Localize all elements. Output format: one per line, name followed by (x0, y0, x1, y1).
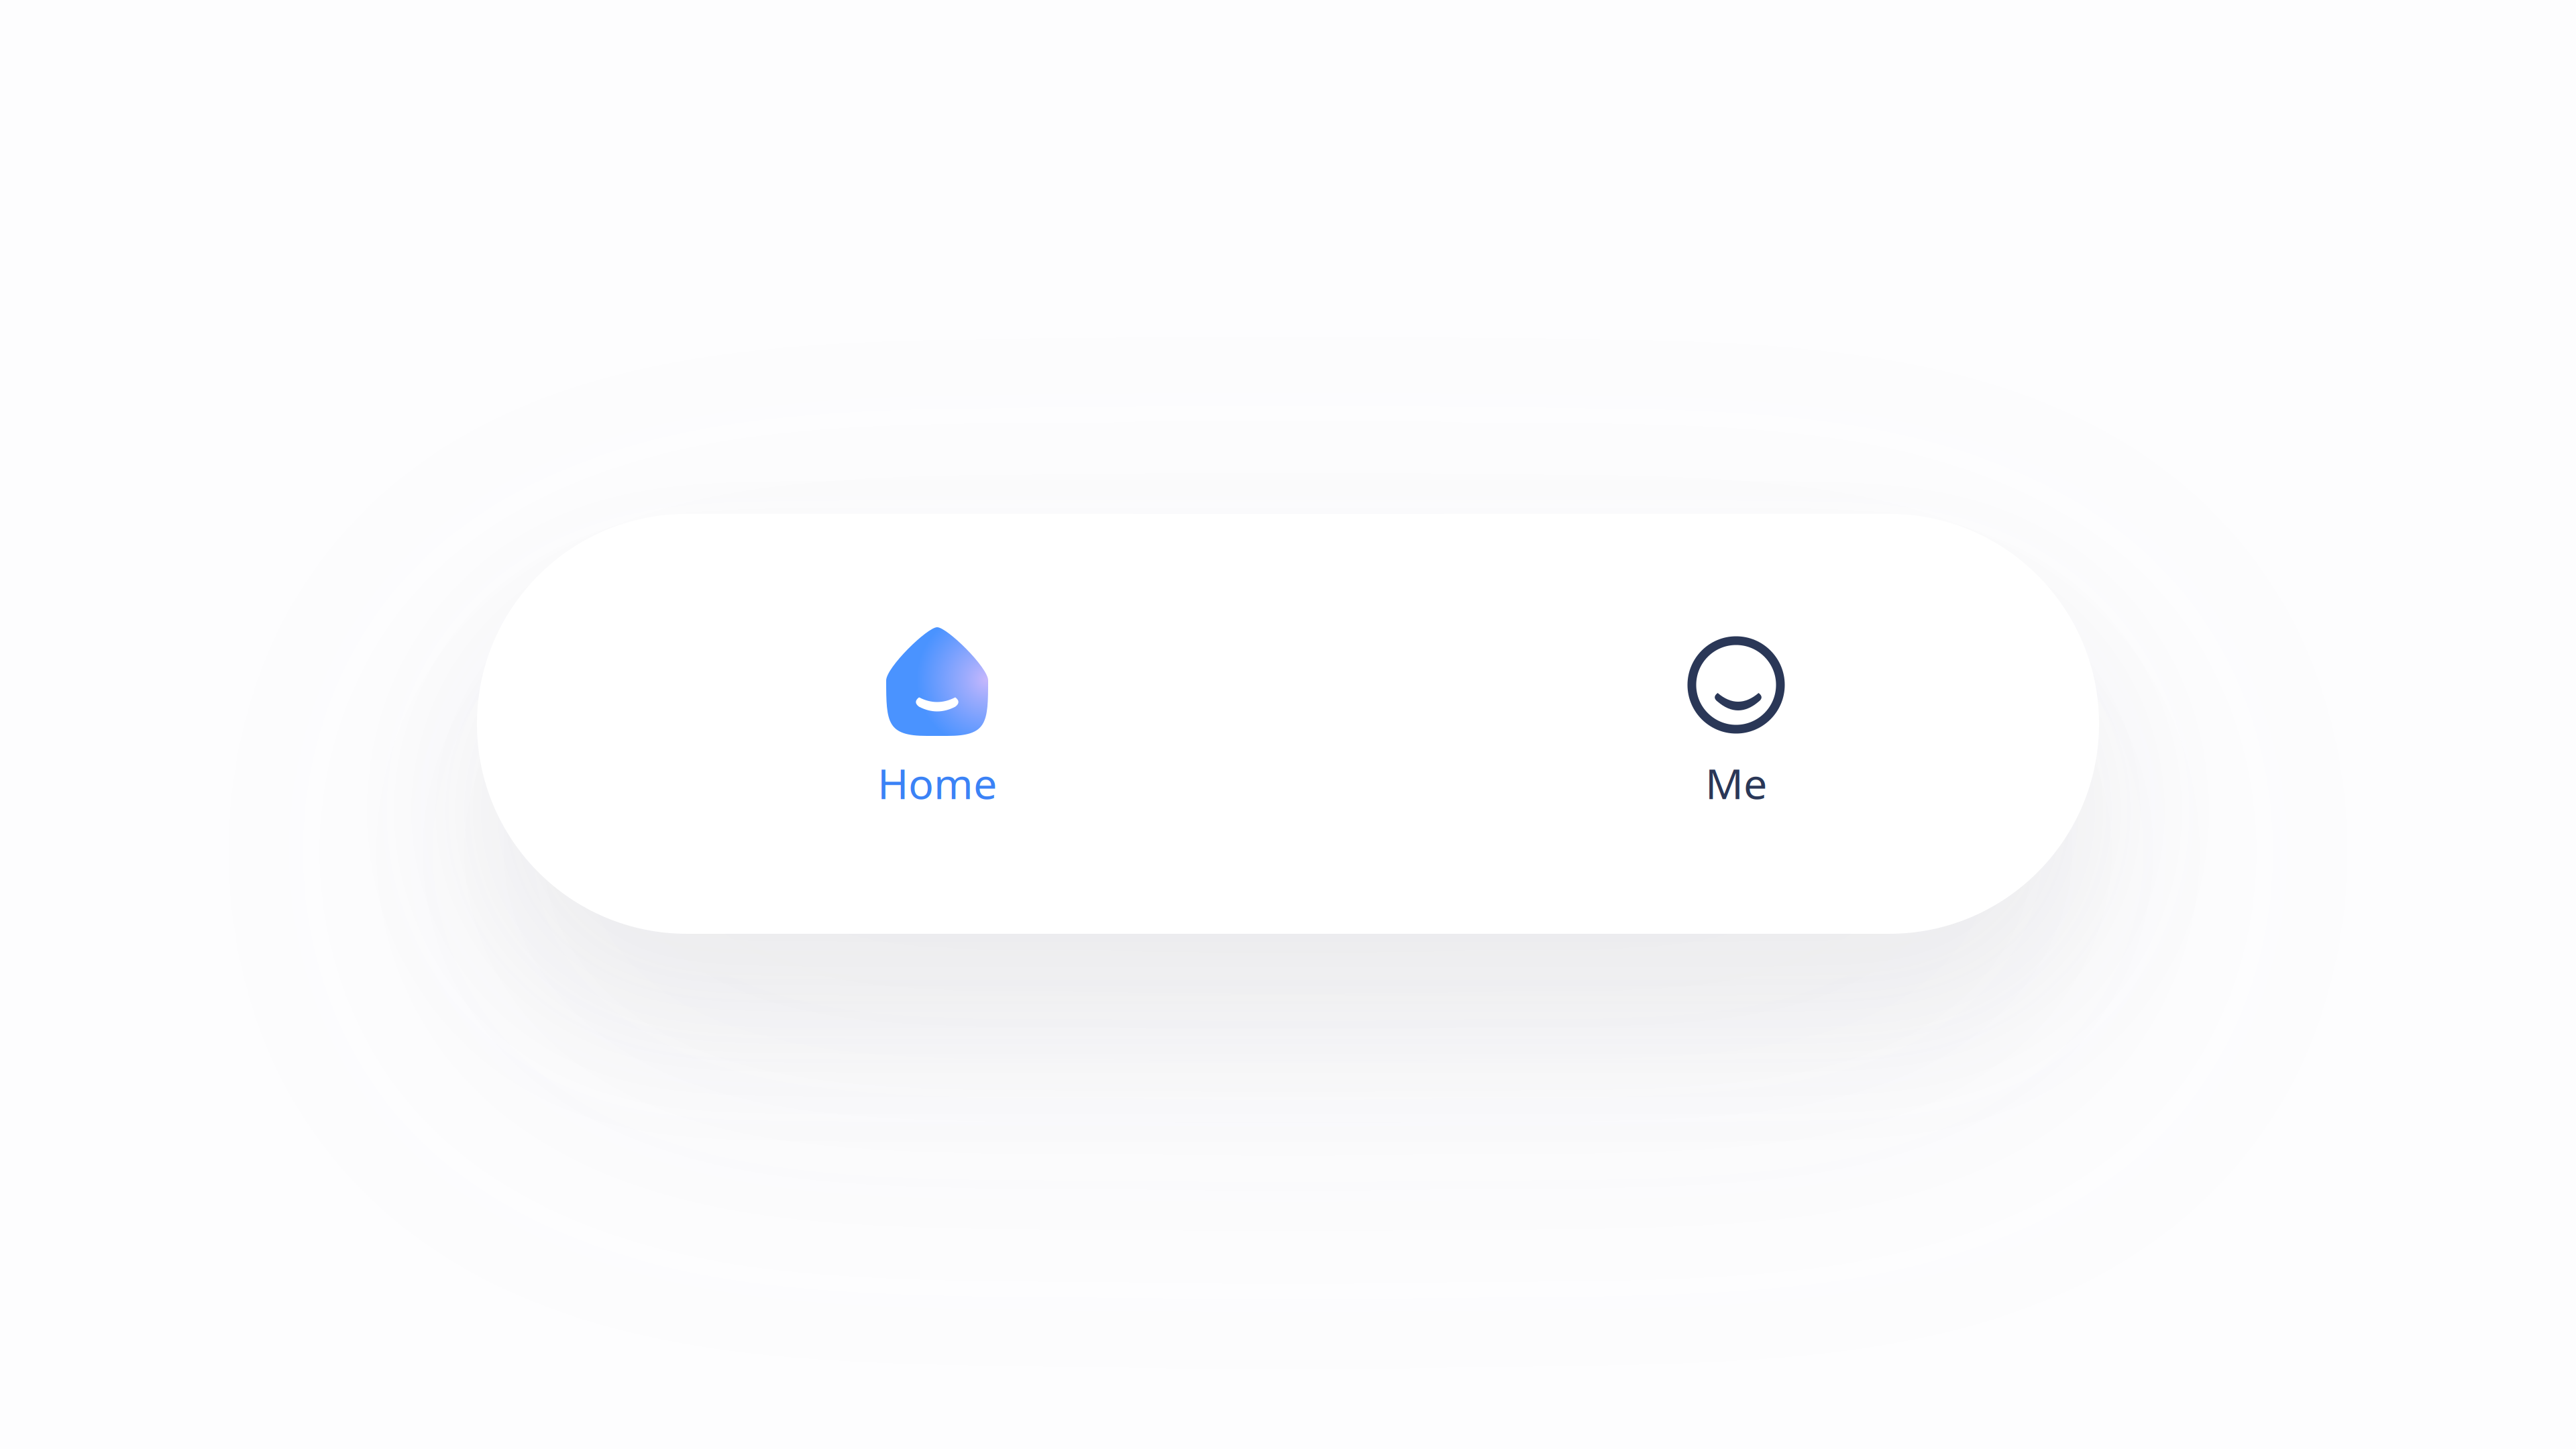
staticText: Me (1705, 755, 1767, 811)
button[interactable]: Me (1623, 611, 1849, 837)
button[interactable]: Home (824, 611, 1050, 837)
staticText: Home (877, 755, 997, 811)
